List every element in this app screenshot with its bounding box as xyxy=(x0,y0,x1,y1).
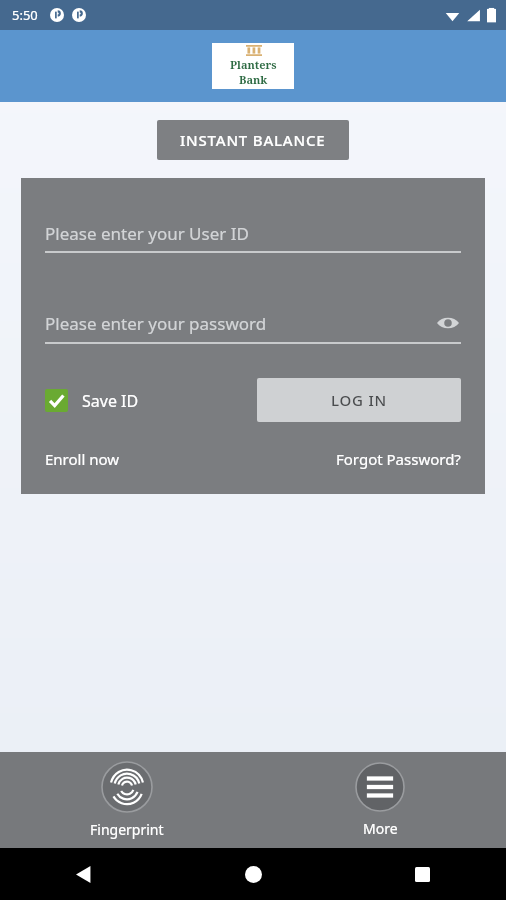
button[interactable]: Show password xyxy=(435,310,461,336)
button[interactable]: Fingerprint xyxy=(82,753,172,847)
button[interactable]: Home xyxy=(231,852,275,896)
button[interactable]: Recent apps xyxy=(400,852,444,896)
button[interactable]: Save ID xyxy=(45,389,139,412)
button[interactable]: Back xyxy=(62,852,106,896)
staticText: Please enter your User ID xyxy=(45,222,249,245)
button[interactable]: Planters Bank logo xyxy=(212,43,294,89)
staticText: 5:50 xyxy=(12,6,38,24)
staticText: Fingerprint xyxy=(90,820,164,839)
staticText: Please enter your password xyxy=(45,312,267,335)
button[interactable]: LOG IN xyxy=(257,378,461,422)
button[interactable]: More xyxy=(347,754,413,846)
button[interactable]: INSTANT BALANCE xyxy=(157,120,349,160)
staticText: INSTANT BALANCE xyxy=(180,130,326,150)
button[interactable]: Enroll now xyxy=(45,449,120,469)
staticText: Save ID xyxy=(82,390,139,412)
button[interactable]: Please enter your password xyxy=(45,310,461,344)
staticText: More xyxy=(363,819,398,838)
staticText: Planters xyxy=(230,57,277,72)
button[interactable]: Forgot Password? xyxy=(336,449,461,469)
staticText: Forgot Password? xyxy=(336,449,461,469)
staticText: LOG IN xyxy=(331,390,388,410)
staticText: Enroll now xyxy=(45,449,120,469)
staticText: Bank xyxy=(239,72,268,87)
button[interactable]: Please enter your User ID xyxy=(45,222,461,253)
